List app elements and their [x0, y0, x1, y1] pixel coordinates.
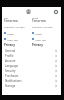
button[interactable]: Traffic [32, 31, 61, 35]
staticText: Privacy [4, 43, 15, 47]
button[interactable]: Traffic [4, 31, 31, 35]
staticText: Purchases [5, 74, 55, 78]
staticText: Traffic [7, 32, 14, 35]
button[interactable]: Language [2, 63, 61, 68]
staticText: Summary of today [4, 25, 25, 28]
staticText: 100% chg [7, 38, 18, 41]
staticText: General [5, 49, 55, 53]
button[interactable]: 100% chg [32, 37, 61, 41]
button[interactable]: Account [2, 58, 61, 63]
staticText: 100% chg [35, 38, 46, 41]
staticText: Traffic [35, 32, 42, 35]
button[interactable]: Notifications [2, 78, 61, 83]
staticText: Make [32, 16, 39, 19]
staticText: Notifications [5, 79, 55, 83]
button[interactable]: Settings [53, 9, 58, 14]
staticText: Tomorrow [32, 19, 46, 23]
button[interactable]: Storage [2, 83, 61, 88]
button[interactable]: 100% chg [4, 37, 31, 41]
button[interactable]: Profile photo [26, 9, 31, 14]
staticText: Summary of today [32, 25, 53, 28]
staticText: Get [4, 16, 8, 19]
staticText: Account [5, 59, 55, 63]
button[interactable]: Purchases [2, 73, 61, 78]
staticText: Storage [5, 84, 55, 88]
button[interactable]: General [2, 48, 61, 53]
staticText: Language [5, 64, 55, 68]
button[interactable]: Security [2, 68, 61, 73]
staticText: Tomorrow [4, 19, 18, 23]
staticText: Security [5, 69, 55, 73]
button[interactable]: Profile [2, 53, 61, 58]
staticText: Privacy [32, 43, 43, 47]
staticText: Profile [5, 54, 55, 58]
